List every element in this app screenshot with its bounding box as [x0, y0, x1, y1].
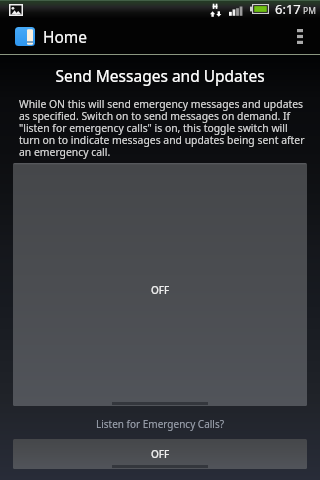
- staticText: Home: [43, 26, 88, 47]
- button[interactable]: More options: [286, 18, 320, 55]
- button[interactable]: OFF: [13, 163, 307, 406]
- staticText: Listen for Emergency Calls?: [0, 417, 320, 431]
- staticText: OFF: [151, 283, 170, 297]
- staticText: Send Messages and Updates: [0, 65, 320, 86]
- staticText: 6:17: [275, 0, 301, 18]
- button[interactable]: OFF: [13, 439, 307, 469]
- staticText: While ON this will send emergency messag…: [19, 97, 306, 159]
- staticText: PM: [303, 5, 316, 17]
- staticText: OFF: [151, 447, 170, 461]
- button[interactable]: Home: [0, 26, 94, 47]
